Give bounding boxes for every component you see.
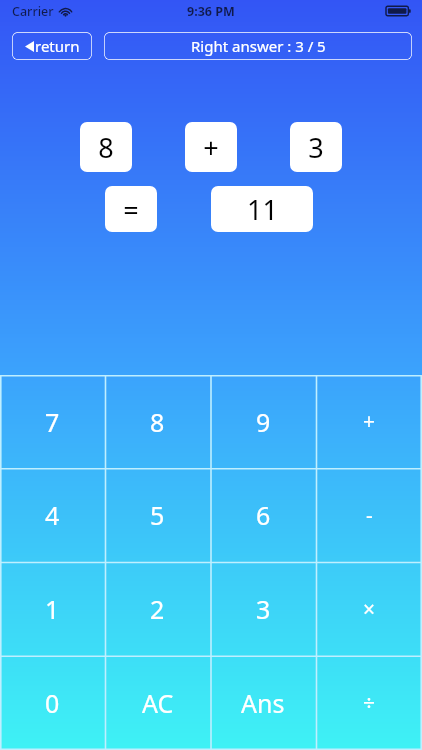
button[interactable]: + [185,122,237,172]
staticText: × [363,595,376,624]
staticText: 8 [150,405,165,439]
staticText: 6 [256,498,271,532]
button[interactable]: 11 [211,186,313,232]
staticText: 1 [45,592,60,626]
button[interactable]: 4 [0,468,105,562]
staticText: 3 [256,592,271,626]
staticText: return [35,36,80,56]
button[interactable]: 9 [210,375,316,468]
button[interactable]: - [316,468,422,562]
button[interactable]: 7 [0,375,105,468]
button[interactable]: AC [105,656,210,750]
staticText: + [363,407,376,436]
staticText: 4 [45,498,60,532]
button[interactable]: ÷ [316,656,422,750]
staticText: 9 [256,405,271,439]
staticText: ÷ [363,689,376,718]
staticText: 7 [45,405,60,439]
staticText: 5 [150,498,165,532]
staticText: AC [142,686,174,720]
staticText: 0 [45,686,60,720]
button[interactable]: 6 [210,468,316,562]
button[interactable]: = [105,186,157,232]
staticText: + [203,129,219,166]
button[interactable]: 0 [0,656,105,750]
button[interactable]: 3 [210,562,316,656]
button[interactable]: Ans [210,656,316,750]
staticText: 9:36 PM [187,3,235,20]
staticText: Ans [241,686,285,720]
button[interactable]: + [316,375,422,468]
staticText: Carrier [12,3,54,20]
staticText: 3 [308,129,324,166]
button[interactable]: return [12,32,92,60]
button[interactable]: 3 [290,122,342,172]
staticText: 8 [98,129,114,166]
button[interactable]: 5 [105,468,210,562]
button[interactable]: × [316,562,422,656]
staticText: Right answer : 3 / 5 [191,36,326,56]
button[interactable]: Right answer : 3 / 5 [104,32,412,60]
button[interactable]: 8 [105,375,210,468]
staticText: 2 [150,592,165,626]
button[interactable]: 1 [0,562,105,656]
staticText: - [366,501,373,530]
button[interactable]: 2 [105,562,210,656]
staticText: = [123,191,139,228]
button[interactable]: 8 [80,122,132,172]
staticText: 11 [247,191,278,228]
